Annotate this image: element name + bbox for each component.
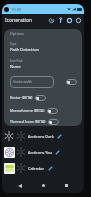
staticText: Iconeration xyxy=(5,17,33,24)
staticText: Arcticons Dark xyxy=(28,134,54,139)
staticText: Arcticons You xyxy=(28,150,52,155)
staticText: Type xyxy=(10,42,17,46)
button[interactable]: Toggle xyxy=(47,108,58,114)
staticText: Stroke width xyxy=(13,80,32,84)
staticText: None xyxy=(10,64,21,70)
button[interactable]: Home xyxy=(38,180,49,191)
staticText: Monochrome (BETA) xyxy=(10,108,45,113)
button[interactable]: Info xyxy=(74,16,83,25)
button[interactable]: Arcticons Dark xyxy=(3,128,84,144)
staticText: Options xyxy=(10,31,25,36)
button[interactable]: Arcticons You xyxy=(3,144,84,160)
button[interactable]: Monochrome (BETA) xyxy=(10,104,77,117)
button[interactable]: Calendar xyxy=(3,160,84,176)
button[interactable]: Settings xyxy=(65,16,74,25)
staticText: Icon Pack xyxy=(10,59,23,63)
button[interactable]: Toggle xyxy=(35,95,46,101)
button[interactable]: History xyxy=(47,16,56,25)
button[interactable]: Tools xyxy=(56,16,65,25)
button[interactable]: Recents xyxy=(61,180,72,191)
button[interactable]: Edit xyxy=(46,164,54,172)
button[interactable]: Type xyxy=(10,42,77,53)
button[interactable]: Vector (BETA) xyxy=(10,91,77,104)
staticText: Themed Icons (BETA) xyxy=(10,119,46,124)
button[interactable]: Toggle xyxy=(66,79,77,85)
staticText: Calendar xyxy=(28,166,45,171)
staticText: Vector (BETA) xyxy=(10,95,33,100)
button[interactable]: Back xyxy=(14,180,25,191)
button[interactable]: Toggle xyxy=(48,119,59,125)
staticText: 10:09 xyxy=(11,7,22,12)
staticText: Path Detection xyxy=(10,47,40,53)
button[interactable]: Edit xyxy=(53,148,61,156)
button[interactable]: Stroke width xyxy=(10,76,54,88)
button[interactable]: Themed Icons (BETA) xyxy=(10,117,77,126)
button[interactable]: Edit xyxy=(55,132,63,140)
button[interactable]: Icon Pack xyxy=(10,59,77,70)
